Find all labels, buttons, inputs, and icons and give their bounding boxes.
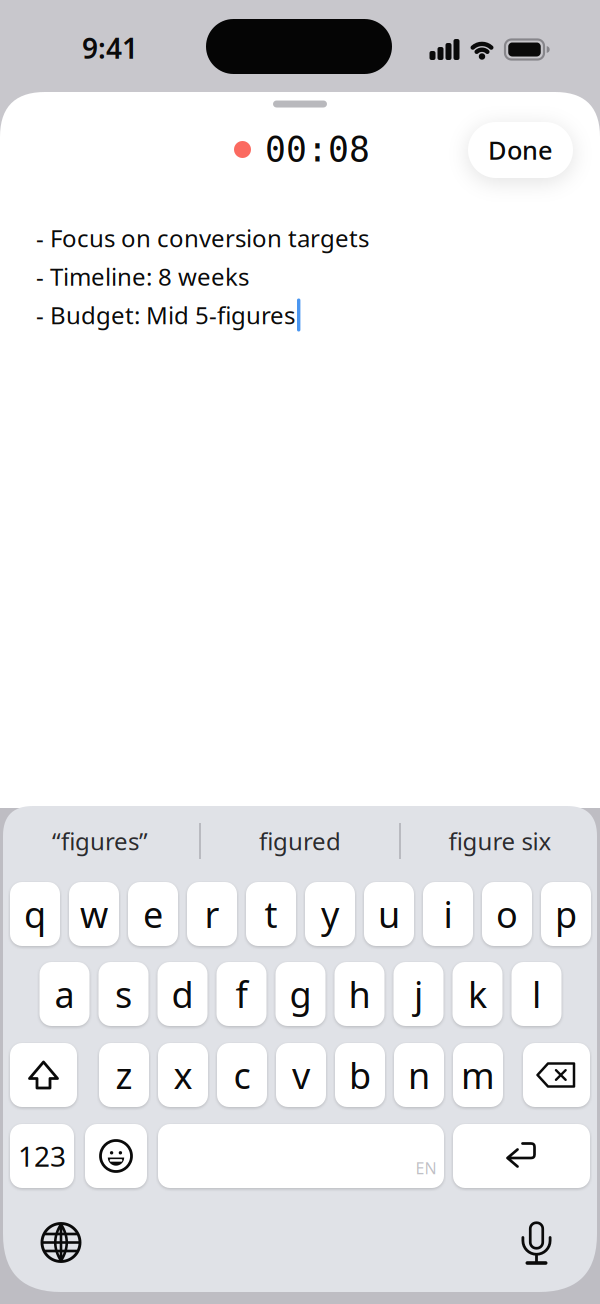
staticText: f — [235, 970, 247, 1018]
button[interactable]: y — [305, 882, 355, 946]
button[interactable]: q — [10, 882, 60, 946]
staticText: - Timeline: 8 weeks — [36, 261, 249, 292]
button[interactable]: Next keyboard — [37, 1218, 85, 1266]
staticText: b — [349, 1051, 371, 1099]
button[interactable]: f — [216, 962, 266, 1026]
staticText: w — [80, 890, 108, 938]
button[interactable]: x — [158, 1043, 208, 1107]
staticText: j — [414, 970, 423, 1018]
button[interactable]: Delete — [523, 1043, 590, 1107]
staticText: EN — [415, 1157, 436, 1179]
button[interactable]: c — [217, 1043, 267, 1107]
staticText: a — [54, 970, 74, 1018]
button[interactable]: h — [334, 962, 384, 1026]
button[interactable]: figured — [205, 812, 395, 870]
button[interactable]: Space — [158, 1124, 444, 1188]
staticText: g — [289, 970, 311, 1018]
staticText: - Budget: Mid 5-figures — [36, 299, 295, 331]
button[interactable]: v — [276, 1043, 326, 1107]
staticText: 9:41 — [82, 29, 138, 67]
staticText: 123 — [18, 1137, 66, 1175]
staticText: q — [24, 890, 46, 938]
staticText: s — [115, 970, 132, 1018]
button[interactable]: Dictation — [514, 1218, 558, 1266]
staticText: v — [292, 1051, 310, 1099]
button[interactable]: 123 — [10, 1124, 74, 1188]
staticText: figured — [259, 825, 341, 857]
staticText: x — [173, 1051, 192, 1099]
button[interactable]: e — [128, 882, 178, 946]
button[interactable]: i — [423, 882, 473, 946]
staticText: e — [143, 890, 163, 938]
button[interactable]: “figures” — [5, 812, 195, 870]
staticText: d — [171, 970, 193, 1018]
staticText: i — [443, 890, 452, 938]
button[interactable]: g — [275, 962, 325, 1026]
staticText: t — [264, 890, 277, 938]
button[interactable]: Emoji — [85, 1124, 147, 1188]
button[interactable]: p — [541, 882, 591, 946]
staticText: l — [532, 970, 541, 1018]
button[interactable]: n — [394, 1043, 444, 1107]
button[interactable]: a — [39, 962, 89, 1026]
button[interactable]: k — [452, 962, 502, 1026]
staticText: o — [496, 890, 518, 938]
staticText: 00:08 — [265, 130, 370, 169]
staticText: p — [555, 890, 577, 938]
staticText: Done — [488, 133, 553, 167]
button[interactable]: r — [187, 882, 237, 946]
button[interactable]: b — [335, 1043, 385, 1107]
button[interactable]: j — [393, 962, 443, 1026]
button[interactable]: m — [453, 1043, 503, 1107]
staticText: u — [378, 890, 400, 938]
staticText: n — [408, 1051, 430, 1099]
staticText: r — [204, 890, 219, 938]
staticText: figure six — [448, 825, 551, 857]
staticText: - Focus on conversion targets — [36, 222, 369, 254]
button[interactable]: u — [364, 882, 414, 946]
staticText: m — [461, 1051, 495, 1099]
button[interactable]: Done — [468, 122, 573, 178]
staticText: y — [321, 890, 339, 938]
button[interactable]: o — [482, 882, 532, 946]
button[interactable]: w — [69, 882, 119, 946]
staticText: “figures” — [52, 825, 148, 857]
button[interactable]: Return — [453, 1124, 590, 1188]
button[interactable]: Shift — [10, 1043, 77, 1107]
button[interactable]: d — [157, 962, 207, 1026]
staticText: h — [348, 970, 370, 1018]
button[interactable]: t — [246, 882, 296, 946]
button[interactable]: figure six — [405, 812, 595, 870]
button[interactable]: l — [511, 962, 561, 1026]
staticText: z — [115, 1051, 132, 1099]
button[interactable]: z — [99, 1043, 149, 1107]
staticText: c — [233, 1051, 250, 1099]
staticText: k — [468, 970, 487, 1018]
button[interactable]: s — [98, 962, 148, 1026]
